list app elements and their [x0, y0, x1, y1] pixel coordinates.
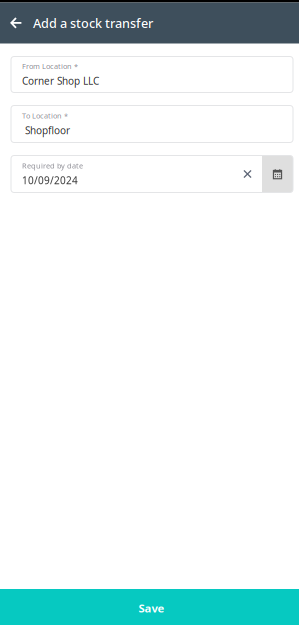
staticText: Save [138, 600, 164, 616]
staticText: To Location * [22, 111, 68, 121]
staticText: Shopfloor [25, 124, 70, 137]
button[interactable]: Back [5, 2, 27, 43]
button[interactable]: Save [0, 589, 299, 625]
button[interactable]: Open date picker [262, 155, 293, 192]
staticText: From Location * [22, 61, 78, 71]
staticText: Corner Shop LLC [22, 74, 99, 88]
staticText: Add a stock transfer [33, 14, 153, 32]
staticText: 10/09/2024 [22, 174, 78, 187]
staticText: Required by date [22, 161, 83, 171]
button[interactable]: Clear date [237, 155, 262, 192]
